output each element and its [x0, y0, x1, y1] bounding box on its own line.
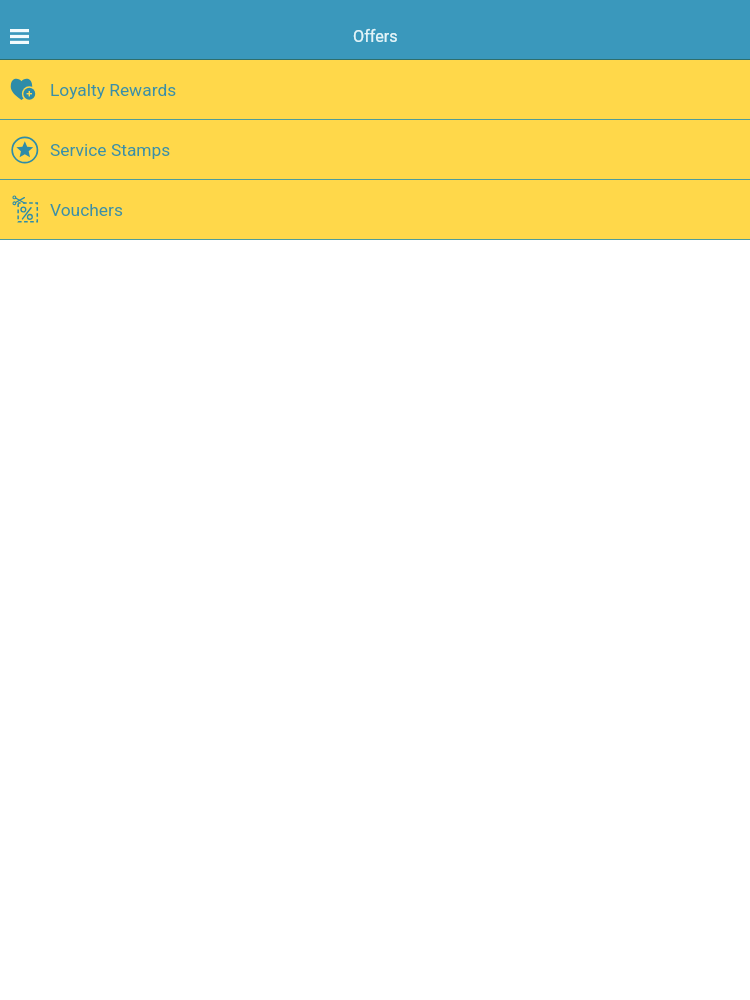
staticText: Offers	[353, 27, 398, 46]
button[interactable]: Open navigation menu	[1, 18, 37, 54]
staticText: Service Stamps	[50, 140, 171, 160]
staticText: Vouchers	[50, 200, 123, 220]
button[interactable]: Service Stamps	[0, 120, 750, 180]
staticText: Loyalty Rewards	[50, 80, 177, 100]
button[interactable]: Vouchers	[0, 180, 750, 240]
button[interactable]: Loyalty Rewards	[0, 60, 750, 120]
